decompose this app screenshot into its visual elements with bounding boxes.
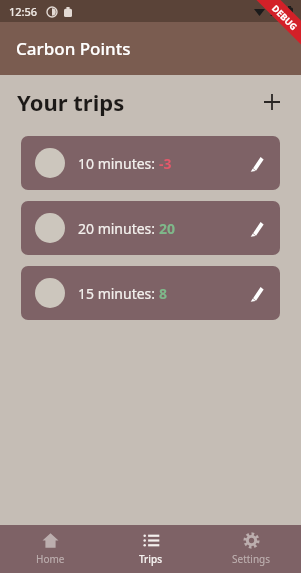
staticText: 10 minutes: [78, 154, 159, 173]
button[interactable]: 20 minutes: [21, 201, 280, 255]
staticText: 8 [159, 284, 168, 303]
staticText: -3 [159, 154, 172, 173]
button[interactable]: Settings [201, 525, 301, 573]
button[interactable]: 15 minutes: [21, 266, 280, 320]
button[interactable]: Home [0, 525, 101, 573]
staticText: Carbon Points [16, 37, 131, 60]
button[interactable]: Trips [101, 525, 201, 573]
button[interactable]: Edit trip [236, 208, 276, 248]
staticText: 12:56 [9, 4, 38, 19]
staticText: Your trips [17, 87, 125, 117]
staticText: DEBUG [270, 2, 300, 32]
staticText: Trips [139, 552, 163, 566]
button[interactable]: Edit trip [236, 273, 276, 313]
staticText: Settings [232, 552, 271, 566]
staticText: 20 [159, 219, 176, 238]
button[interactable]: 10 minutes: [21, 136, 280, 190]
staticText: Home [36, 552, 65, 566]
button[interactable]: Edit trip [236, 143, 276, 183]
staticText: 15 minutes: [78, 284, 159, 303]
staticText: 20 minutes: [78, 219, 159, 238]
button[interactable]: Add trip [255, 85, 289, 119]
